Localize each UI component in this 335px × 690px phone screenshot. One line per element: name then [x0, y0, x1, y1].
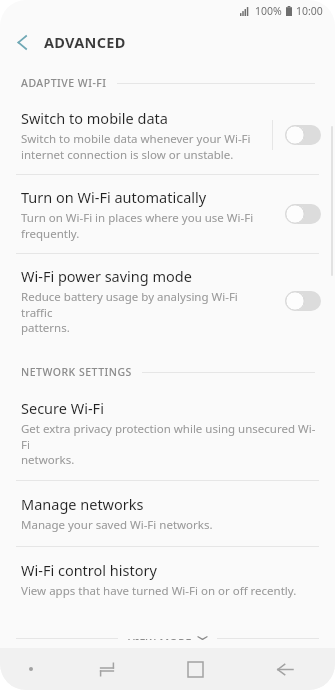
staticText: Manage networks [21, 494, 144, 514]
button[interactable]: Recents [62, 648, 151, 690]
staticText: NETWORK SETTINGS [21, 365, 132, 379]
button[interactable]: Wi-Fi control history [0, 547, 335, 612]
button[interactable]: Switch to mobile data [0, 96, 335, 174]
staticText: VIEW MORE [128, 636, 192, 640]
staticText: Secure Wi-Fi [21, 398, 104, 418]
button[interactable]: Manage networks [0, 481, 335, 546]
button[interactable]: Toggle [285, 291, 321, 311]
staticText: 100% [255, 4, 282, 18]
button[interactable]: Home [151, 648, 240, 690]
staticText: Manage your saved Wi-Fi networks. [21, 517, 213, 533]
staticText: Reduce battery usage by analysing Wi-Fi … [21, 289, 272, 335]
staticText: Switch to mobile data whenever your Wi-F… [21, 131, 251, 162]
staticText: View apps that have turned Wi-Fi on or o… [21, 583, 297, 599]
button[interactable]: Assistant [0, 648, 62, 690]
staticText: Turn on Wi-Fi in places where you use Wi… [21, 210, 254, 241]
staticText: Switch to mobile data [21, 108, 168, 128]
staticText: Wi-Fi control history [21, 560, 157, 580]
staticText: Wi-Fi power saving mode [21, 266, 192, 286]
button[interactable]: Turn on Wi-Fi automatically [0, 175, 335, 253]
button[interactable]: Wi-Fi power saving mode [0, 254, 335, 347]
button[interactable]: Secure Wi-Fi [0, 385, 335, 480]
button[interactable]: Back [0, 22, 44, 62]
button[interactable]: Back [240, 648, 329, 690]
button[interactable]: VIEW MORE [0, 628, 335, 648]
staticText: ADAPTIVE WI-FI [21, 76, 107, 90]
staticText: 10:00 [296, 4, 323, 18]
button[interactable]: Toggle [285, 125, 321, 145]
button[interactable]: Toggle [285, 204, 321, 224]
staticText: ADVANCED [44, 32, 126, 52]
staticText: Get extra privacy protection while using… [21, 421, 317, 467]
staticText: Turn on Wi-Fi automatically [21, 187, 207, 207]
